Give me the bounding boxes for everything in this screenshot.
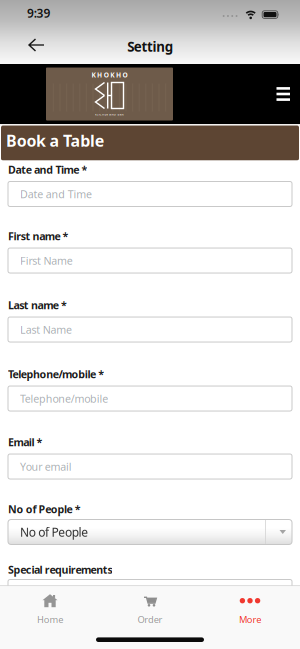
button[interactable]: Your email bbox=[8, 454, 292, 479]
staticText: First name * bbox=[8, 229, 69, 243]
button[interactable]: Last Name bbox=[8, 317, 292, 342]
staticText: Last Name bbox=[20, 322, 72, 337]
staticText: Home bbox=[37, 613, 63, 626]
staticText: Special requirements bbox=[8, 562, 112, 577]
button[interactable]: Telephone/mobile bbox=[8, 386, 292, 411]
staticText: Order bbox=[137, 613, 162, 626]
staticText: No of People * bbox=[8, 502, 81, 516]
staticText: More bbox=[239, 613, 261, 626]
staticText: Last name * bbox=[8, 298, 67, 312]
button[interactable]: First Name bbox=[8, 248, 292, 273]
button[interactable]: No of People bbox=[8, 519, 292, 544]
staticText: Setting bbox=[127, 38, 173, 55]
staticText: First Name bbox=[20, 253, 73, 268]
staticText: Date and Time bbox=[20, 187, 92, 201]
staticText: No of People bbox=[20, 524, 88, 540]
staticText: Your email bbox=[20, 459, 72, 474]
staticText: Telephone/mobile * bbox=[8, 367, 104, 381]
staticText: Book a Table bbox=[6, 130, 105, 151]
staticText: KITCHEN AND BAR bbox=[95, 113, 124, 116]
staticText: Telephone/mobile bbox=[20, 391, 108, 406]
button[interactable]: Order bbox=[100, 594, 200, 626]
button[interactable]: Menu bbox=[268, 77, 300, 111]
staticText: Email * bbox=[8, 435, 43, 449]
button[interactable]: Back bbox=[0, 31, 56, 59]
staticText: Date and Time * bbox=[8, 162, 87, 177]
button[interactable]: Date and Time bbox=[8, 181, 292, 206]
button[interactable] bbox=[8, 579, 292, 604]
button[interactable]: More bbox=[200, 594, 300, 626]
staticText: 9:39 bbox=[27, 5, 50, 21]
staticText: KHOKHO bbox=[91, 71, 127, 79]
button[interactable]: Home bbox=[0, 594, 100, 626]
